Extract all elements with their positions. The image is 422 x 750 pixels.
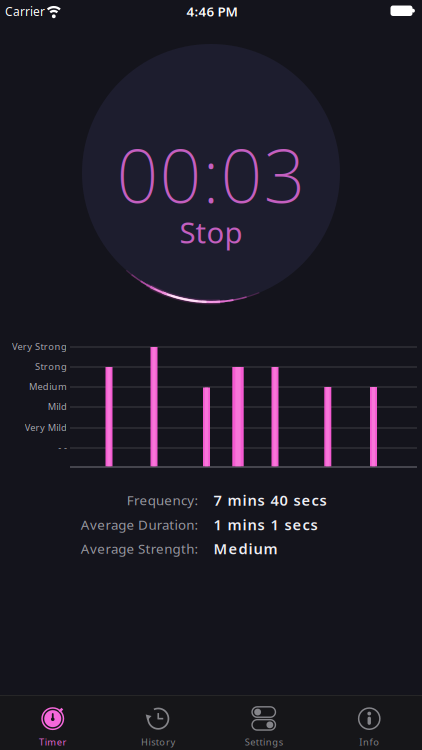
staticText: Info bbox=[359, 736, 379, 748]
staticText: Settings bbox=[245, 736, 283, 748]
staticText: 1 mins 1 secs bbox=[213, 515, 317, 534]
staticText: History bbox=[141, 736, 176, 748]
staticText: Very Mild bbox=[25, 421, 67, 433]
staticText: Frequency: bbox=[127, 491, 198, 509]
staticText: Very Strong bbox=[12, 340, 67, 352]
staticText: 7 mins 40 secs bbox=[213, 490, 326, 510]
button[interactable]: Settings bbox=[211, 695, 316, 750]
button[interactable]: 00:03 bbox=[82, 44, 340, 302]
staticText: - - bbox=[58, 441, 67, 453]
staticText: Medium bbox=[213, 539, 277, 558]
button[interactable]: Info bbox=[316, 695, 422, 750]
staticText: 00:03 bbox=[116, 126, 305, 223]
staticText: Timer bbox=[39, 736, 66, 748]
staticText: Strong bbox=[35, 360, 67, 372]
staticText: Medium bbox=[29, 380, 67, 392]
button[interactable]: History bbox=[105, 695, 211, 750]
button[interactable]: Timer bbox=[0, 695, 105, 750]
staticText: Carrier bbox=[5, 3, 45, 19]
staticText: Stop bbox=[179, 212, 242, 251]
staticText: Mild bbox=[48, 400, 67, 412]
staticText: 4:46 PM bbox=[186, 2, 237, 20]
staticText: Average Duration: bbox=[81, 516, 198, 533]
staticText: Average Strength: bbox=[81, 540, 198, 557]
